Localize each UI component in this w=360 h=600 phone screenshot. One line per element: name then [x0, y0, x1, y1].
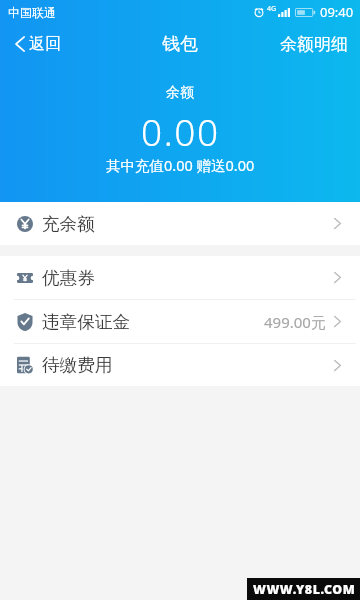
button[interactable]: 返回 — [0, 28, 73, 60]
staticText: 4G — [267, 4, 277, 14]
staticText: 余额 — [166, 84, 194, 102]
staticText: 499.00元 — [264, 312, 326, 332]
staticText: 待缴费用 — [42, 354, 113, 376]
staticText: 钱包 — [162, 33, 198, 56]
button[interactable]: 待缴费用 — [0, 344, 360, 386]
staticText: 其中充值0.00 赠送0.00 — [106, 155, 255, 175]
button[interactable]: 优惠券 — [0, 256, 360, 300]
button[interactable]: 违章保证金 — [0, 300, 360, 344]
staticText: 中国联通 — [8, 5, 56, 20]
staticText: 优惠券 — [42, 267, 95, 289]
staticText: 09:40 — [320, 3, 354, 21]
staticText: WWW.Y8L.COM — [253, 581, 356, 598]
button[interactable]: 充余额 — [0, 202, 360, 245]
staticText: 0.00 — [141, 106, 220, 156]
button[interactable]: 余额明细 — [268, 28, 360, 61]
staticText: 余额明细 — [280, 34, 348, 55]
staticText: 违章保证金 — [42, 311, 130, 333]
staticText: 返回 — [29, 34, 61, 54]
staticText: 充余额 — [42, 213, 95, 235]
